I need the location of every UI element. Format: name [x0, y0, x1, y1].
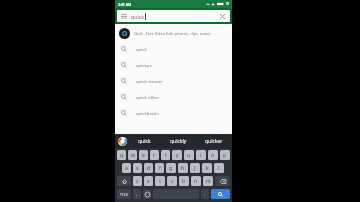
button[interactable]: f: [155, 163, 164, 173]
button[interactable]: y: [172, 150, 182, 160]
staticText: v: [171, 178, 174, 185]
staticText: w: [131, 152, 135, 159]
staticText: ,: [136, 191, 138, 197]
staticText: z: [136, 178, 139, 185]
button[interactable]: m: [203, 176, 213, 186]
button[interactable]: t: [161, 150, 170, 160]
button[interactable]: x: [144, 176, 153, 186]
staticText: g: [169, 165, 173, 172]
staticText: r: [153, 152, 156, 159]
staticText: e: [142, 152, 145, 159]
staticText: y: [176, 152, 179, 159]
button[interactable]: k: [202, 163, 212, 173]
staticText: 2:41 AM: [118, 2, 132, 7]
staticText: 95: [226, 2, 230, 6]
staticText: a: [125, 165, 128, 172]
button[interactable]: j: [190, 163, 200, 173]
staticText: i: [200, 152, 202, 159]
button[interactable]: b: [179, 176, 189, 186]
staticText: f: [159, 165, 161, 172]
button[interactable]: quick: [115, 41, 232, 57]
staticText: quick: [131, 13, 144, 20]
button[interactable]: d: [144, 163, 153, 173]
button[interactable]: q: [117, 150, 126, 160]
staticText: s: [136, 165, 139, 172]
button[interactable]: quick office: [115, 89, 232, 105]
button[interactable]: u: [184, 150, 194, 160]
button[interactable]: ?123: [117, 189, 131, 199]
button[interactable]: quickpic: [115, 57, 232, 73]
button[interactable]: Menu: [120, 12, 128, 20]
staticText: n: [194, 178, 198, 185]
button[interactable]: Quik - Free Video Edit..photos, clips, m…: [115, 25, 232, 41]
staticText: quickly: [170, 138, 187, 145]
staticText: j: [194, 165, 196, 172]
button[interactable]: r: [150, 150, 159, 160]
button[interactable]: n: [191, 176, 201, 186]
staticText: .: [204, 191, 206, 197]
button[interactable]: s: [133, 163, 142, 173]
button[interactable]: c: [155, 176, 165, 186]
staticText: q: [120, 152, 124, 159]
button[interactable]: a: [122, 163, 131, 173]
staticText: quickpic: [136, 62, 153, 68]
button[interactable]: i: [196, 150, 206, 160]
button[interactable]: v: [167, 176, 177, 186]
staticText: t: [165, 152, 167, 159]
button[interactable]: Emoji: [143, 189, 151, 199]
button[interactable]: .: [201, 189, 209, 199]
button[interactable]: ,: [133, 189, 141, 199]
staticText: Quik - Free Video Edit..photos, clips, m…: [134, 31, 228, 36]
button[interactable]: o: [208, 150, 218, 160]
staticText: ?123: [120, 192, 128, 197]
button[interactable]: g: [166, 163, 176, 173]
button[interactable]: z: [133, 176, 142, 186]
button[interactable]: Backspace: [215, 176, 230, 186]
staticText: quick office: [136, 94, 160, 100]
staticText: d: [147, 165, 151, 172]
staticText: b: [182, 178, 186, 185]
staticText: x: [147, 178, 150, 185]
button[interactable]: e: [139, 150, 148, 160]
staticText: quickbooks: [136, 110, 159, 116]
button[interactable]: Clear search: [218, 12, 227, 21]
staticText: quicker: [205, 138, 223, 145]
staticText: m: [206, 178, 211, 185]
button[interactable]: Google: [118, 137, 127, 146]
staticText: h: [181, 165, 185, 172]
button[interactable]: Menu: [117, 10, 230, 22]
staticText: u: [187, 152, 191, 159]
staticText: p: [223, 152, 227, 159]
button[interactable]: l: [214, 163, 224, 173]
staticText: l: [218, 165, 220, 172]
button[interactable]: quickbooks: [115, 105, 232, 121]
staticText: quick: [138, 138, 151, 145]
button[interactable]: quicker: [196, 134, 231, 148]
button[interactable]: quick: [127, 134, 161, 148]
staticText: quick remote: [136, 78, 163, 84]
button[interactable]: quickly: [161, 134, 196, 148]
button[interactable]: p: [220, 150, 230, 160]
button[interactable]: quick remote: [115, 73, 232, 89]
button[interactable]: w: [128, 150, 137, 160]
staticText: o: [211, 152, 215, 159]
button[interactable]: h: [178, 163, 188, 173]
staticText: quick: [136, 46, 147, 52]
button[interactable]: Search: [211, 189, 230, 199]
staticText: c: [159, 178, 162, 185]
button[interactable]: Shift: [117, 176, 131, 186]
staticText: k: [206, 165, 209, 172]
